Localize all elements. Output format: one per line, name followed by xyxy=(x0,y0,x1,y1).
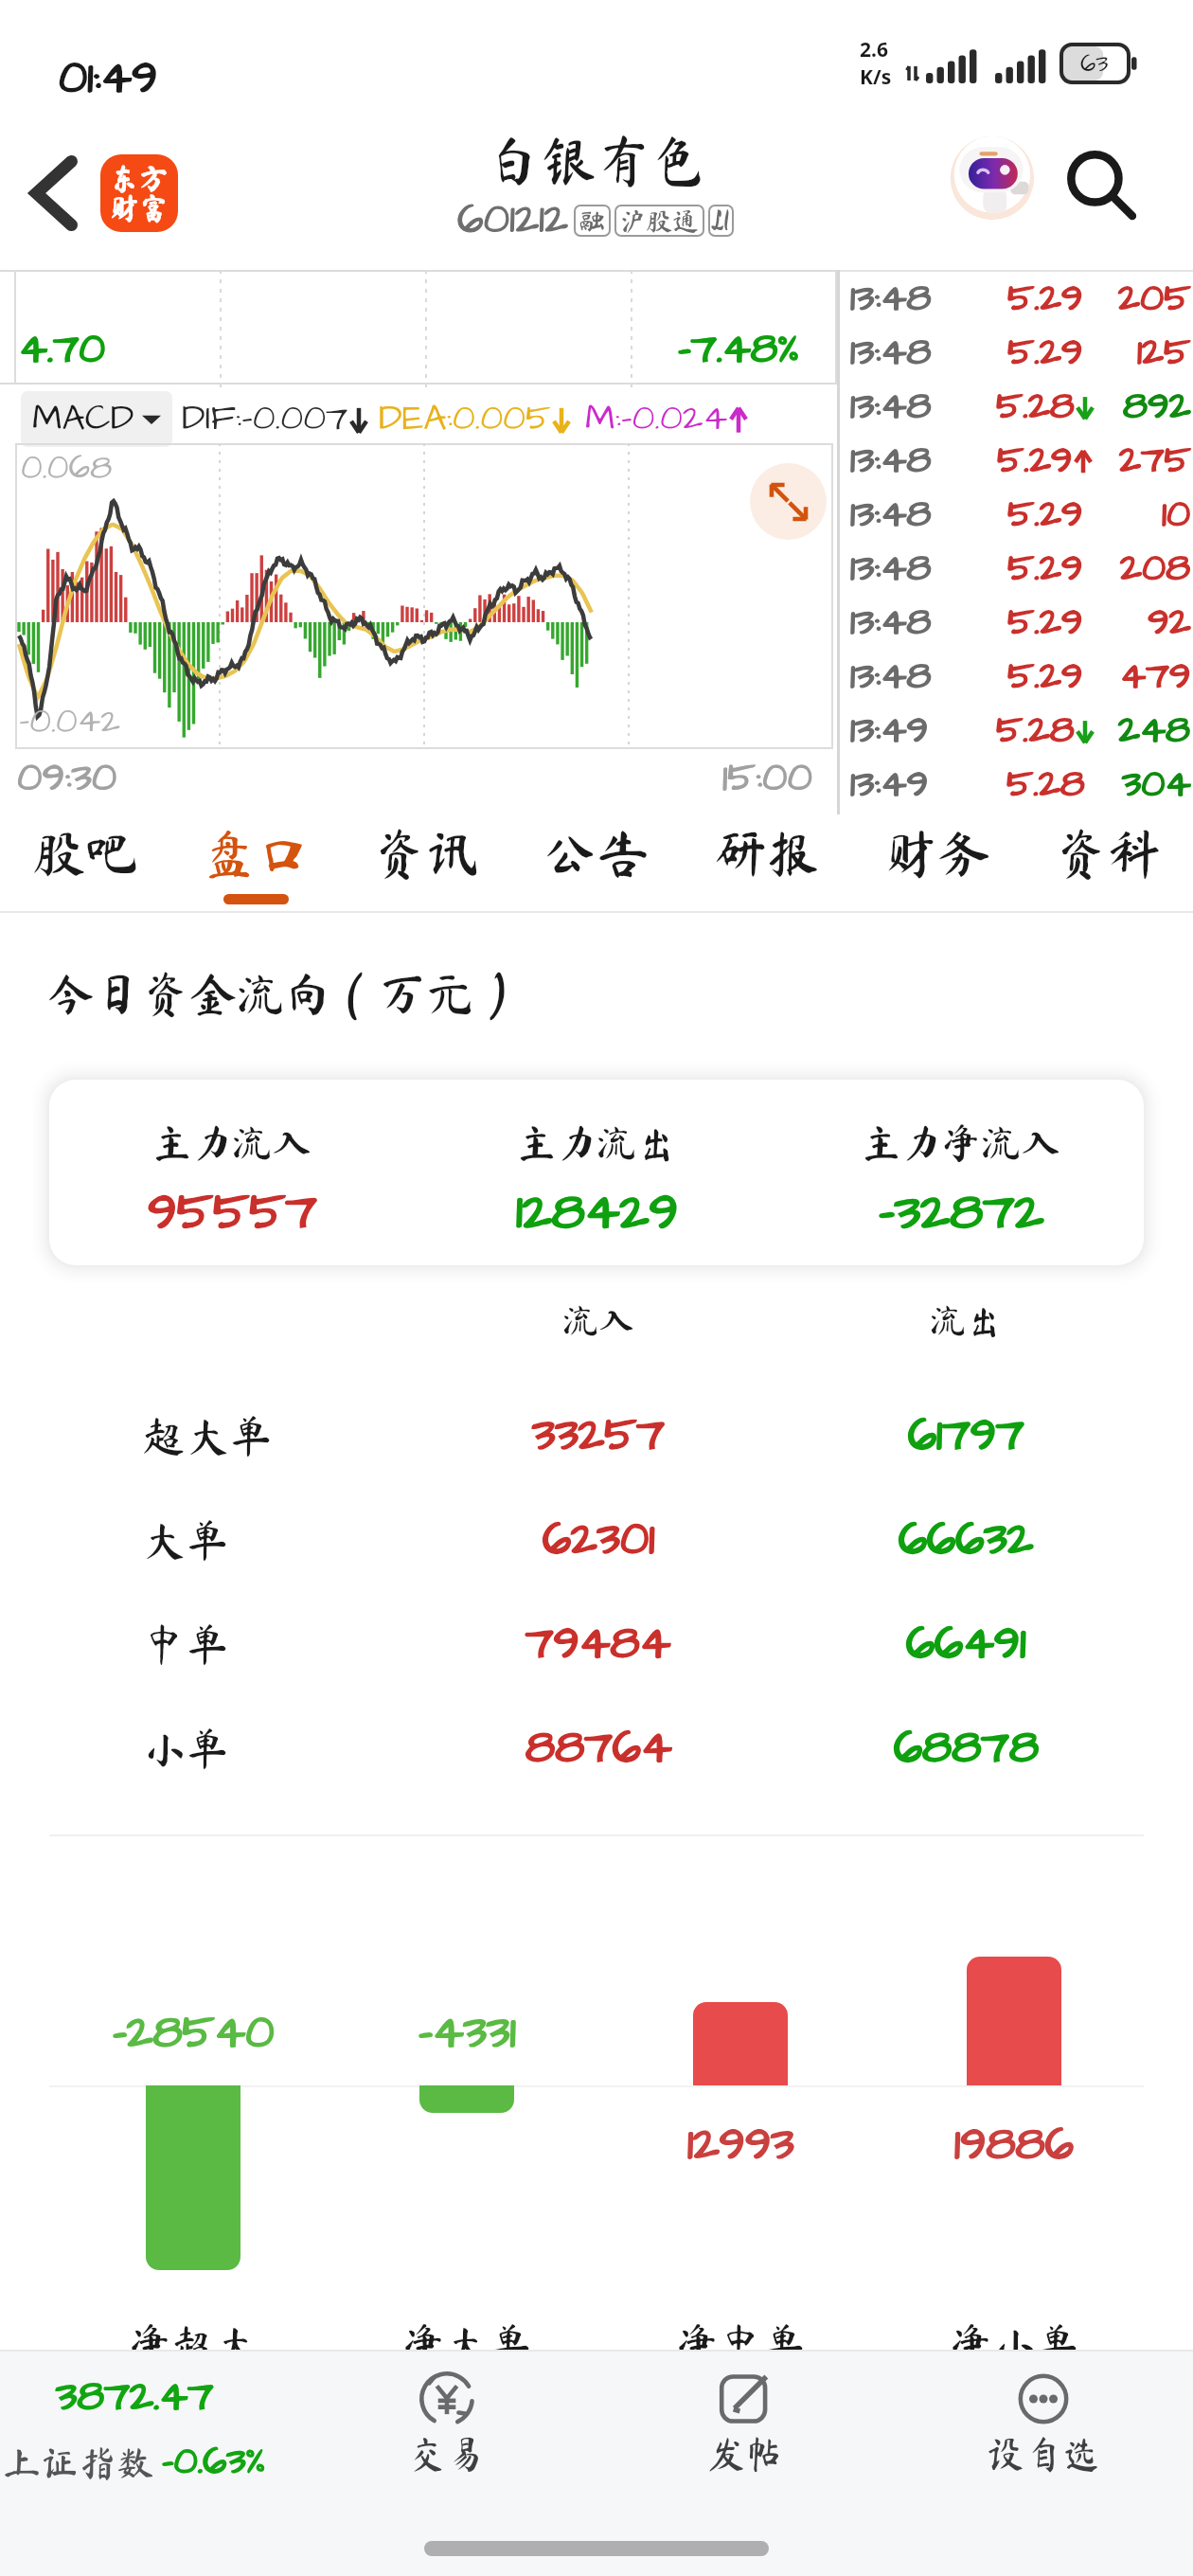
button[interactable]: 股吧 xyxy=(0,814,170,913)
staticText: 5.29 xyxy=(997,435,1073,488)
staticText: 248 xyxy=(1118,705,1191,758)
staticText: 304 xyxy=(1122,759,1191,812)
staticText: 白银有色 xyxy=(487,133,707,188)
staticText: 财富 xyxy=(110,193,169,223)
button[interactable]: 13:48 xyxy=(841,272,1193,326)
staticText: 79484 xyxy=(525,1613,671,1676)
button[interactable]: 13:48 xyxy=(841,542,1193,596)
button[interactable]: 研报 xyxy=(682,814,852,913)
button[interactable]: 资料 xyxy=(1023,814,1193,913)
staticText: 09:30 xyxy=(17,751,117,806)
button[interactable]: Search xyxy=(1066,150,1138,222)
staticText: 5.28 xyxy=(996,381,1075,434)
staticText: 13:48 xyxy=(850,273,932,326)
staticText: 3872.47 xyxy=(56,2369,214,2426)
staticText: 09:30 xyxy=(17,751,117,806)
staticText: 12993 xyxy=(687,2114,794,2177)
button[interactable]: 13:48 xyxy=(841,488,1193,542)
staticText: 13:48 xyxy=(850,597,932,650)
button[interactable]: 中单 xyxy=(0,1592,1193,1696)
staticText: 财务 xyxy=(884,827,990,880)
staticText: 主力流入 xyxy=(152,1122,312,1162)
staticText: 5.28 xyxy=(996,381,1075,434)
button[interactable]: 财务 xyxy=(852,814,1023,913)
staticText: 13:48 xyxy=(850,543,932,596)
staticText: 208 xyxy=(1120,543,1191,596)
staticText: 5.29 xyxy=(1007,543,1083,596)
staticText: -7.48% xyxy=(678,321,800,379)
staticText: 2.6 xyxy=(860,36,888,63)
button[interactable]: 公告 xyxy=(511,814,682,913)
staticText: 主力净流入 xyxy=(862,1122,1061,1162)
staticText: 92 xyxy=(1148,597,1191,650)
staticText: 892 xyxy=(1123,381,1191,434)
button[interactable]: Back xyxy=(23,153,85,233)
staticText: 275 xyxy=(1119,435,1191,488)
staticText: 208 xyxy=(1120,543,1191,596)
staticText: 128429 xyxy=(516,1177,679,1248)
button[interactable]: Full screen chart xyxy=(750,463,827,540)
staticText: 5.29 xyxy=(1007,489,1083,542)
staticText: 5.28 xyxy=(1006,759,1085,812)
staticText: 13:49 xyxy=(850,759,929,812)
button[interactable]: 设自选 xyxy=(958,2363,1129,2495)
staticText: 发帖 xyxy=(707,2435,783,2473)
staticText: -4331 xyxy=(418,2002,516,2066)
staticText: 19886 xyxy=(954,2114,1074,2177)
staticText: DIF:-0.007 xyxy=(182,394,348,444)
staticText: 5.29 xyxy=(1007,651,1083,704)
button[interactable]: 13:48 xyxy=(841,650,1193,704)
staticText: 601212 xyxy=(457,191,568,249)
staticText: 601212 xyxy=(457,191,568,249)
staticText: 东方 xyxy=(110,164,169,193)
staticText: 13:48 xyxy=(850,543,932,596)
staticText: 交易 xyxy=(409,2435,485,2473)
staticText: 5.28 xyxy=(1006,759,1085,812)
staticText: 61797 xyxy=(908,1404,1024,1468)
button[interactable]: 交易 xyxy=(362,2363,532,2495)
button[interactable]: 资讯 xyxy=(341,814,511,913)
staticText: K/s xyxy=(860,63,892,91)
staticText: 股吧 xyxy=(32,827,138,880)
staticText: DEA:0.005 xyxy=(379,394,551,444)
button[interactable]: 盘口 xyxy=(170,814,341,913)
staticText: 5.29 xyxy=(1007,597,1083,650)
staticText: 12993 xyxy=(687,2114,794,2177)
button[interactable]: 13:49 xyxy=(841,758,1193,812)
button[interactable]: 小单 xyxy=(0,1696,1193,1800)
staticText: -0.63% xyxy=(162,2436,266,2489)
staticText: 上证指数 xyxy=(3,2443,154,2481)
button[interactable]: 超大单 xyxy=(0,1384,1193,1488)
staticText: 5.28 xyxy=(996,705,1075,758)
staticText: 13:48 xyxy=(850,489,932,542)
staticText: 19886 xyxy=(954,2114,1074,2177)
staticText: 13:49 xyxy=(850,705,929,758)
button[interactable]: 13:48 xyxy=(841,326,1193,380)
staticText: 125 xyxy=(1137,327,1191,380)
staticText: 33257 xyxy=(532,1404,665,1468)
staticText: 62301 xyxy=(543,1509,655,1572)
button[interactable]: 13:48 xyxy=(841,596,1193,650)
button[interactable]: 大单 xyxy=(0,1488,1193,1592)
button[interactable]: East Money xyxy=(100,154,178,232)
staticText: 流入 xyxy=(562,1302,635,1338)
button[interactable]: 13:49 xyxy=(841,704,1193,758)
button[interactable]: 13:48 xyxy=(841,380,1193,434)
button[interactable]: AI assistant xyxy=(945,133,1036,224)
staticText: 95557 xyxy=(148,1177,317,1248)
staticText: 13:48 xyxy=(850,651,932,704)
staticText: 4.70 xyxy=(19,321,105,379)
button[interactable]: 主力流入 xyxy=(49,1080,1144,1265)
button[interactable]: 发帖 xyxy=(660,2363,830,2495)
staticText: 中单 xyxy=(142,1622,229,1666)
staticText: 公告 xyxy=(543,827,650,880)
button[interactable]: MACD xyxy=(21,391,172,447)
staticText: 13:48 xyxy=(850,489,932,542)
staticText: L1 xyxy=(713,207,729,234)
staticText: 128429 xyxy=(516,1177,679,1248)
staticText: -0.63% xyxy=(162,2436,266,2489)
staticText: 68878 xyxy=(894,1717,1039,1780)
staticText: 479 xyxy=(1120,651,1191,704)
button[interactable]: 13:48 xyxy=(841,434,1193,488)
button[interactable]: 3872.47 xyxy=(0,2369,276,2489)
